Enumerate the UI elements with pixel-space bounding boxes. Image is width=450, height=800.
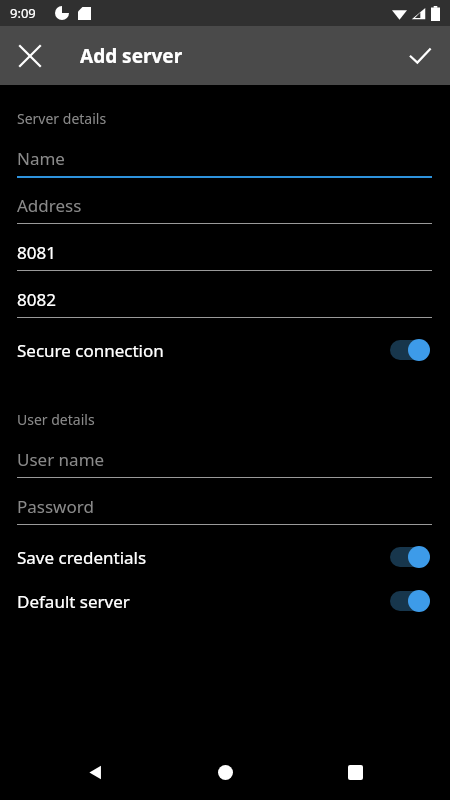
staticText: 8081 xyxy=(17,241,56,264)
staticText: Default server xyxy=(17,590,390,613)
staticText: Save credentials xyxy=(17,546,390,569)
button[interactable]: Default server xyxy=(0,579,450,623)
staticText: Secure connection xyxy=(17,339,390,362)
staticText: User name xyxy=(17,448,105,471)
staticText: User details xyxy=(17,410,95,429)
button[interactable]: Close xyxy=(10,36,50,76)
button[interactable]: Save credentials xyxy=(0,535,450,579)
staticText: Password xyxy=(17,495,94,518)
staticText: Server details xyxy=(17,109,107,128)
button[interactable]: Password xyxy=(0,488,450,535)
button[interactable]: 8082 xyxy=(0,281,450,328)
button[interactable]: Secure connection xyxy=(0,328,450,372)
button[interactable]: Name xyxy=(0,140,450,187)
button[interactable]: Recent apps xyxy=(333,750,377,794)
staticText: Add server xyxy=(80,43,183,69)
staticText: 9:09 xyxy=(10,4,36,22)
button[interactable]: Save xyxy=(400,36,440,76)
button[interactable]: 8081 xyxy=(0,234,450,281)
staticText: Name xyxy=(17,147,65,170)
staticText: 8082 xyxy=(17,288,56,311)
button[interactable]: Home xyxy=(203,750,247,794)
button[interactable]: Back xyxy=(73,750,117,794)
button[interactable]: User name xyxy=(0,441,450,488)
button[interactable]: Address xyxy=(0,187,450,234)
staticText: Address xyxy=(17,194,82,217)
